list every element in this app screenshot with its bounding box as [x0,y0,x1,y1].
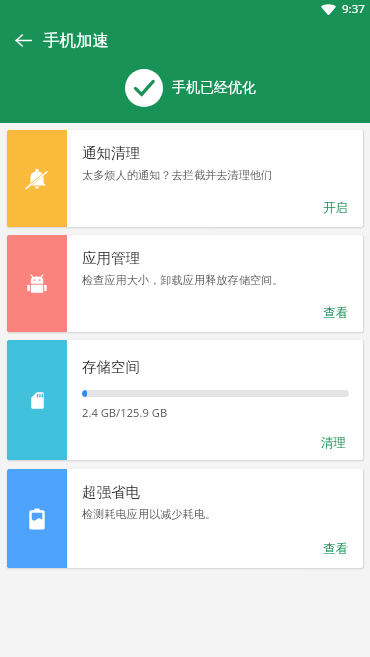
staticText: 开启 [323,200,348,216]
button[interactable]: Back [3,24,43,56]
staticText: 存储空间 [82,358,140,376]
staticText: 太多烦人的通知？去拦截并去清理他们 [82,168,273,182]
button[interactable]: 查看 [315,535,348,568]
staticText: 应用管理 [82,249,140,267]
staticText: 9:37 [342,1,365,17]
staticText: 查看 [323,305,348,321]
button[interactable]: 开启 [315,194,348,227]
button[interactable]: 应用管理 [7,235,363,332]
staticText: 检查应用大小，卸载应用释放存储空间。 [82,273,284,287]
button[interactable]: 清理 [313,429,349,460]
button[interactable]: 查看 [315,299,348,332]
staticText: 检测耗电应用以减少耗电。 [82,507,217,521]
staticText: 清理 [321,435,346,451]
staticText: 2.4 GB/125.9 GB [82,405,168,420]
button[interactable]: 通知清理 [7,130,363,227]
staticText: 手机加速 [43,30,109,51]
button[interactable]: 存储空间 [7,340,363,460]
staticText: 通知清理 [82,144,140,162]
staticText: 超强省电 [82,483,140,501]
staticText: 查看 [323,541,348,557]
staticText: 手机已经优化 [172,79,256,97]
button[interactable]: 超强省电 [7,469,363,568]
